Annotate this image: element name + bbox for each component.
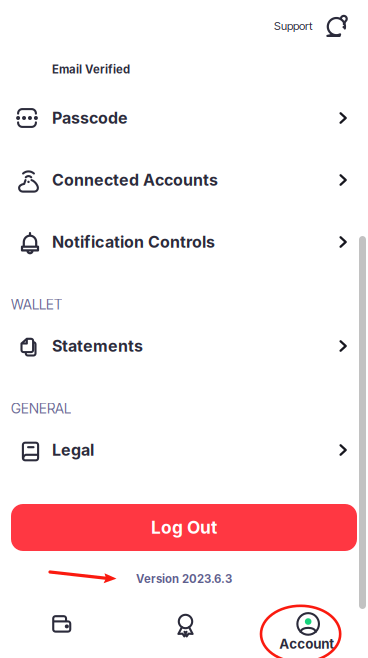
staticText: Statements	[52, 336, 143, 356]
button[interactable]: Log Out	[11, 504, 357, 551]
staticText: Passcode	[52, 108, 128, 128]
button[interactable]: Passcode	[0, 87, 368, 149]
button[interactable]: Support	[274, 6, 368, 46]
button[interactable]: Notification Controls	[0, 211, 368, 273]
staticText: WALLET	[11, 296, 62, 313]
staticText: Account	[279, 636, 334, 652]
button[interactable]: Statements	[0, 315, 368, 377]
button[interactable]: Connected Accounts	[0, 149, 368, 211]
staticText: GENERAL	[11, 400, 71, 417]
staticText: Notification Controls	[52, 232, 215, 252]
staticText: Connected Accounts	[52, 170, 218, 190]
staticText: Legal	[52, 440, 94, 460]
staticText: Log Out	[151, 517, 217, 538]
staticText: Support	[274, 19, 313, 33]
staticText: Email Verified	[52, 63, 130, 76]
button[interactable]: Legal	[0, 419, 368, 481]
staticText: Version 2023.6.3	[136, 572, 232, 586]
button[interactable]: Account	[245, 604, 368, 658]
button[interactable]: Rewards	[123, 604, 245, 658]
button[interactable]: Wallet	[0, 604, 123, 658]
